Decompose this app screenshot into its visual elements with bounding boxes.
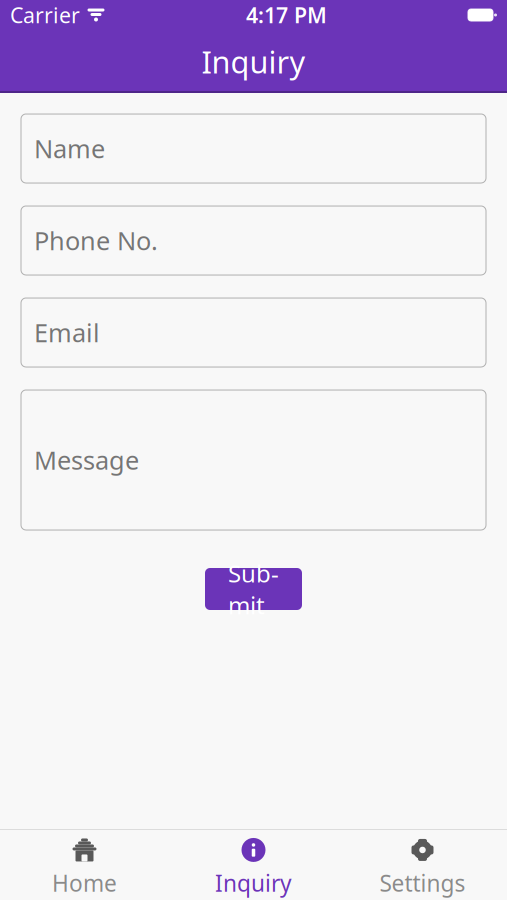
staticText: Message xyxy=(34,443,139,477)
staticText: Email xyxy=(34,316,100,349)
button[interactable]: Phone No. xyxy=(21,206,486,275)
button[interactable]: Name xyxy=(21,114,486,183)
button[interactable]: Inquiry xyxy=(169,836,338,900)
staticText: Submit xyxy=(228,557,279,621)
staticText: 4:17 PM xyxy=(246,1,327,29)
staticText: Phone No. xyxy=(34,224,158,257)
staticText: Home xyxy=(52,868,117,898)
staticText: Inquiry xyxy=(201,41,305,82)
staticText: Settings xyxy=(379,868,465,898)
button[interactable]: Message xyxy=(21,390,486,530)
button[interactable]: Submit xyxy=(205,568,302,610)
button[interactable]: Email xyxy=(21,298,486,367)
button[interactable]: Settings xyxy=(338,836,507,900)
button[interactable]: Home xyxy=(0,836,169,900)
staticText: Inquiry xyxy=(215,868,292,898)
staticText: Carrier xyxy=(10,1,80,29)
staticText: Name xyxy=(34,132,105,165)
